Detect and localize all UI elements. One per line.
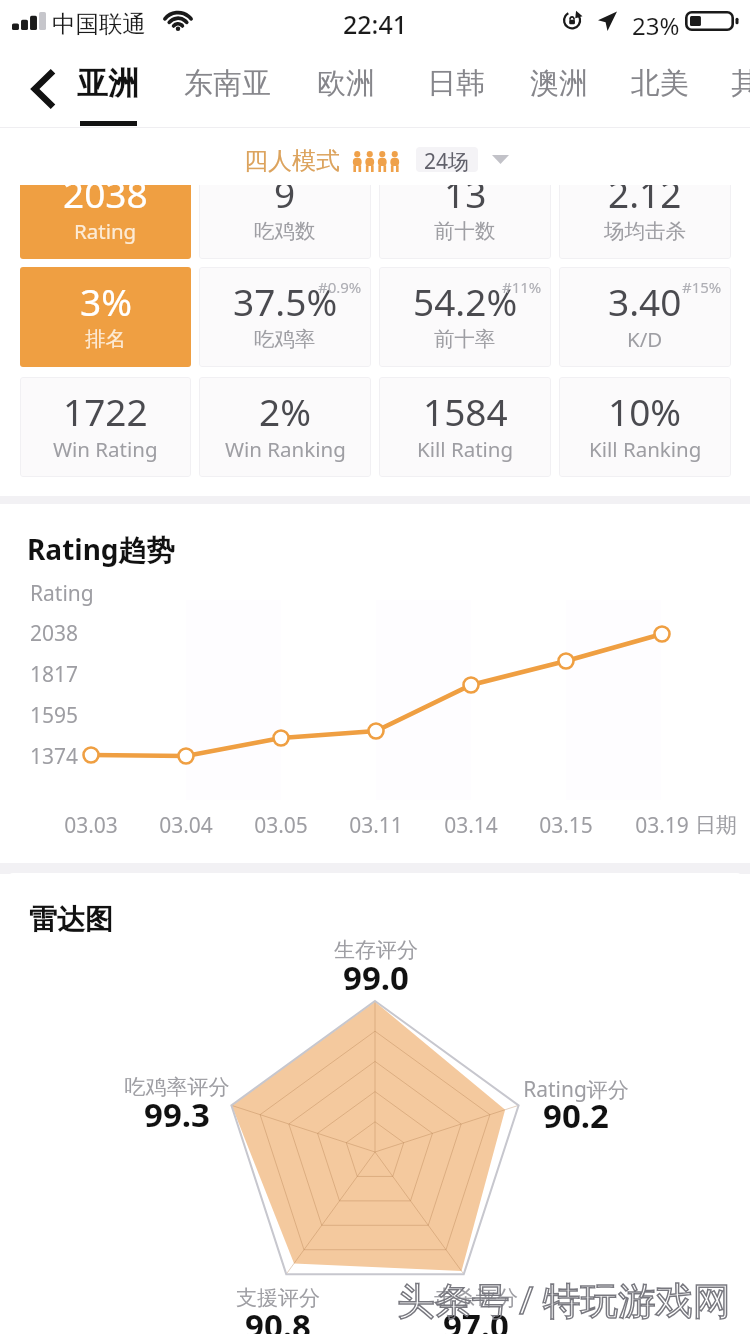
staticText: Kill Rating: [417, 435, 514, 463]
staticText: 03.19: [627, 811, 697, 840]
button[interactable]: 2%: [199, 377, 371, 477]
button[interactable]: 四人模式: [244, 146, 401, 176]
staticText: Rating: [30, 579, 94, 608]
staticText: 日期: [695, 812, 737, 838]
staticText: #11%: [502, 277, 542, 297]
button[interactable]: 2.12: [559, 185, 731, 259]
staticText: 前十率: [434, 326, 496, 352]
staticText: Rating: [74, 217, 137, 245]
button[interactable]: 澳洲: [501, 50, 617, 128]
staticText: 生存评分: [286, 937, 466, 963]
staticText: 1595: [30, 701, 79, 730]
staticText: 东南亚: [184, 65, 271, 102]
staticText: 37.5%: [233, 276, 338, 326]
staticText: 场均击杀: [604, 218, 686, 244]
staticText: 97.0: [386, 1303, 566, 1334]
staticText: 前十数: [434, 218, 496, 244]
button[interactable]: 东南亚: [169, 50, 285, 128]
staticText: 2038: [63, 185, 148, 218]
button[interactable]: 日韩: [398, 50, 514, 128]
button[interactable]: 1584: [379, 377, 551, 477]
staticText: 3%: [80, 276, 132, 326]
staticText: Rating评分: [486, 1075, 666, 1104]
staticText: 03.03: [56, 811, 126, 840]
staticText: 2%: [259, 386, 311, 436]
staticText: 03.05: [246, 811, 316, 840]
button[interactable]: 3%: [20, 267, 191, 367]
staticText: 99.0: [286, 955, 466, 1000]
staticText: 排名: [85, 326, 126, 352]
staticText: 54.2%: [413, 276, 518, 326]
staticText: 四人模式: [244, 146, 340, 176]
staticText: 03.14: [436, 811, 506, 840]
staticText: 2038: [30, 619, 79, 648]
button[interactable]: 欧洲: [288, 50, 404, 128]
staticText: 90.8: [188, 1303, 368, 1334]
staticText: 吃鸡率: [254, 326, 316, 352]
staticText: 9: [274, 185, 296, 218]
staticText: 22:41: [343, 7, 408, 41]
staticText: 支援评分: [188, 1285, 368, 1311]
staticText: 24场: [424, 147, 470, 172]
button[interactable]: More: [486, 147, 514, 172]
staticText: 10%: [608, 386, 682, 436]
button[interactable]: 北美: [602, 50, 718, 128]
staticText: 吃鸡率评分: [87, 1074, 267, 1100]
staticText: K/D: [627, 325, 663, 353]
staticText: 北美: [631, 65, 689, 102]
button[interactable]: 37.5%: [199, 267, 371, 367]
button[interactable]: 亚洲: [50, 50, 166, 128]
staticText: Win Ranking: [225, 435, 346, 463]
button[interactable]: 3.40: [559, 267, 731, 367]
staticText: 击杀评分: [386, 1285, 566, 1311]
staticText: 1722: [63, 386, 148, 436]
button[interactable]: 10%: [559, 377, 731, 477]
staticText: 13: [444, 185, 487, 218]
button[interactable]: 54.2%: [379, 267, 551, 367]
staticText: 1374: [30, 742, 79, 771]
staticText: Win Rating: [53, 435, 158, 463]
staticText: Rating趋势: [27, 530, 175, 568]
staticText: Kill Ranking: [589, 435, 702, 463]
button[interactable]: Back: [8, 50, 78, 128]
staticText: #0.9%: [318, 277, 362, 297]
button[interactable]: 1722: [20, 377, 191, 477]
staticText: 23%: [632, 9, 680, 42]
staticText: 亚洲: [77, 64, 139, 103]
staticText: 99.3: [87, 1092, 267, 1137]
staticText: 中国联通: [52, 9, 146, 39]
button[interactable]: 其: [687, 50, 750, 128]
staticText: 其: [731, 65, 750, 102]
staticText: 1584: [423, 386, 508, 436]
staticText: 雷达图: [29, 902, 113, 937]
staticText: 欧洲: [317, 65, 375, 102]
staticText: 3.40: [608, 276, 682, 326]
button[interactable]: 2038: [20, 185, 191, 259]
button[interactable]: 9: [199, 185, 371, 259]
staticText: 90.2: [486, 1093, 666, 1138]
staticText: 2.12: [608, 185, 682, 218]
button[interactable]: 24场: [416, 147, 478, 172]
staticText: 1817: [30, 660, 79, 689]
button[interactable]: 13: [379, 185, 551, 259]
staticText: 日韩: [427, 65, 485, 102]
staticText: 03.11: [341, 811, 411, 840]
staticText: #15%: [682, 277, 722, 297]
staticText: 吃鸡数: [254, 218, 316, 244]
staticText: 03.15: [531, 811, 601, 840]
staticText: 03.04: [151, 811, 221, 840]
staticText: 头条号 / 特玩游戏网: [397, 1274, 731, 1325]
staticText: 澳洲: [530, 65, 588, 102]
